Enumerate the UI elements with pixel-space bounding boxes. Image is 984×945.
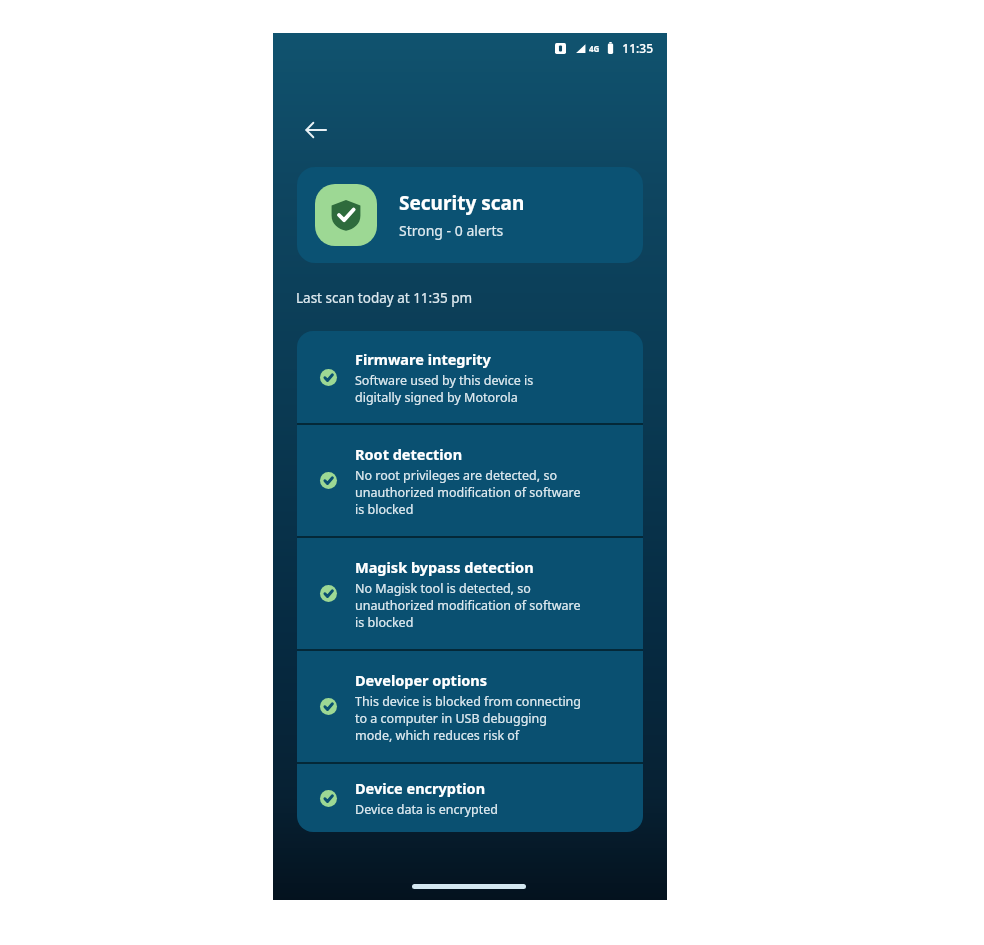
button[interactable]: Firmware integrity — [297, 331, 643, 423]
staticText: No root privileges are detected, so — [355, 467, 557, 484]
button[interactable]: Root detection — [297, 425, 643, 536]
staticText: 4G — [589, 43, 600, 54]
button[interactable]: Security scan — [297, 167, 643, 263]
staticText: No Magisk tool is detected, so — [355, 580, 531, 597]
staticText: Device data is encrypted — [355, 801, 498, 818]
staticText: digitally signed by Motorola — [355, 389, 518, 406]
button[interactable]: Device encryption — [297, 764, 643, 832]
staticText: This device is blocked from connecting — [355, 693, 582, 710]
staticText: unauthorized modification of software — [355, 597, 581, 614]
staticText: to a computer in USB debugging — [355, 710, 547, 727]
staticText: unauthorized modification of software — [355, 484, 581, 501]
staticText: is blocked — [355, 501, 414, 518]
staticText: Security scan — [399, 190, 525, 216]
staticText: Developer options — [355, 670, 487, 690]
staticText: Software used by this device is — [355, 372, 534, 389]
staticText: Firmware integrity — [355, 349, 491, 369]
staticText: Root detection — [355, 444, 463, 464]
button[interactable]: Back — [293, 107, 339, 153]
button[interactable]: Magisk bypass detection — [297, 538, 643, 649]
staticText: Last scan today at 11:35 pm — [296, 289, 473, 307]
staticText: Device encryption — [355, 778, 486, 798]
staticText: is blocked — [355, 614, 414, 631]
staticText: Strong - 0 alerts — [399, 221, 504, 240]
staticText: Magisk bypass detection — [355, 557, 534, 577]
staticText: mode, which reduces risk of — [355, 727, 520, 744]
button[interactable]: Developer options — [297, 651, 643, 762]
staticText: 11:35 — [622, 40, 653, 56]
